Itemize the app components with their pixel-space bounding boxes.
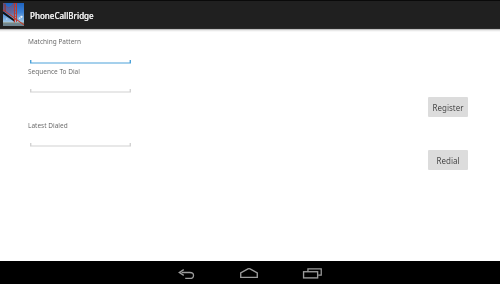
button[interactable]: PhoneCallBridge bbox=[0, 1, 100, 28]
button[interactable]: Home bbox=[240, 268, 258, 278]
button[interactable]: Register bbox=[428, 97, 468, 117]
staticText: PhoneCallBridge bbox=[30, 10, 94, 21]
button[interactable]: Latest Dialed bbox=[24, 121, 136, 152]
button[interactable]: Redial bbox=[428, 150, 468, 170]
staticText: Redial bbox=[436, 155, 460, 166]
staticText: Register bbox=[432, 102, 464, 113]
button[interactable]: Matching Pattern bbox=[24, 37, 136, 68]
button[interactable]: Sequence To Dial bbox=[24, 67, 136, 98]
staticText: Latest Dialed bbox=[28, 121, 68, 130]
staticText: Sequence To Dial bbox=[28, 67, 80, 76]
button[interactable]: Recent apps bbox=[303, 268, 322, 279]
button[interactable]: Back bbox=[178, 269, 194, 280]
staticText: Matching Pattern bbox=[28, 37, 82, 46]
